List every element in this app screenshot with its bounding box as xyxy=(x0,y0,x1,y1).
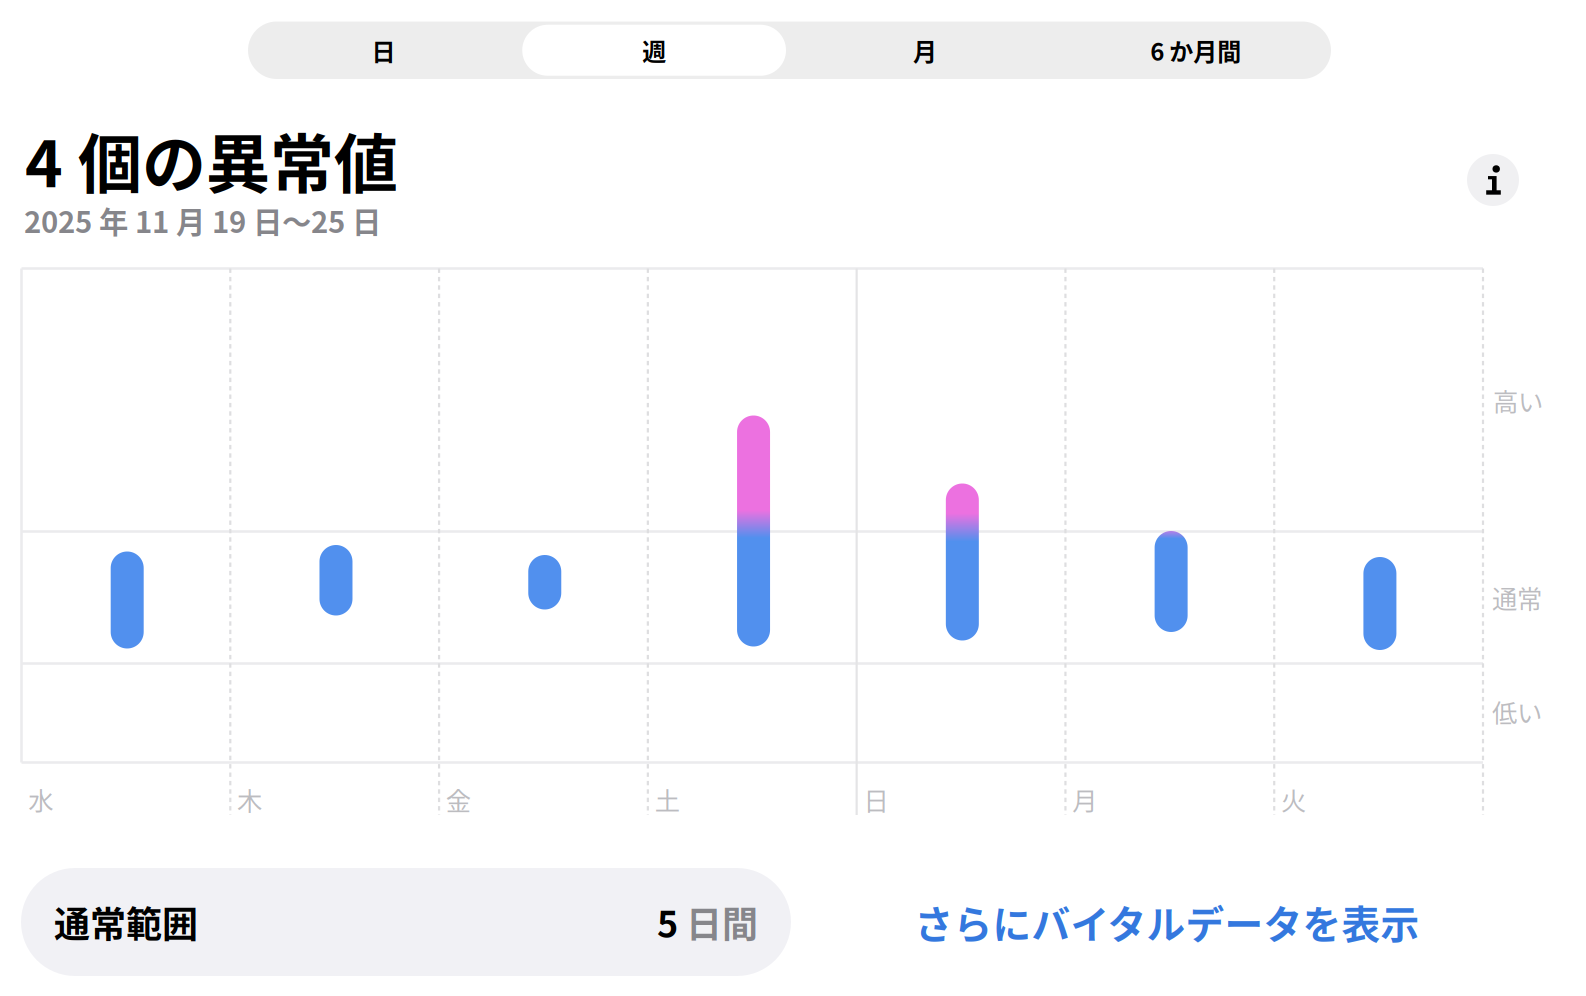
staticText: 2025 年 11 月 19 日〜25 日 xyxy=(24,199,381,241)
staticText: 金 xyxy=(446,781,471,818)
staticText: 土 xyxy=(655,781,680,818)
staticText: 5 xyxy=(657,896,678,948)
staticText: 高い xyxy=(1493,382,1543,419)
staticText: 水 xyxy=(28,781,53,818)
staticText: 月 xyxy=(1072,781,1097,818)
button[interactable]: 通常範囲 xyxy=(21,868,791,976)
staticText: 火 xyxy=(1281,781,1306,818)
staticText: 週 xyxy=(642,33,666,68)
staticText: 日間 xyxy=(678,896,758,948)
button[interactable]: 日 xyxy=(248,21,519,79)
staticText: 日 xyxy=(863,781,888,818)
button[interactable]: 月 xyxy=(789,21,1060,79)
staticText: 通常 xyxy=(1492,579,1542,616)
button[interactable]: 週 xyxy=(519,21,790,79)
staticText: 4 個の異常値 xyxy=(25,113,398,206)
staticText: 木 xyxy=(237,781,262,818)
staticText: 低い xyxy=(1492,693,1542,730)
staticText: 6 か月間 xyxy=(1150,33,1241,68)
staticText: 日 xyxy=(371,33,395,68)
button[interactable]: 詳細情報 xyxy=(1467,154,1519,206)
button[interactable]: さらにバイタルデータを表示 xyxy=(897,868,1437,976)
staticText: さらにバイタルデータを表示 xyxy=(914,894,1419,950)
staticText: 月 xyxy=(913,33,937,68)
button[interactable]: 6 か月間 xyxy=(1060,21,1331,79)
staticText: 通常範囲 xyxy=(54,896,198,948)
